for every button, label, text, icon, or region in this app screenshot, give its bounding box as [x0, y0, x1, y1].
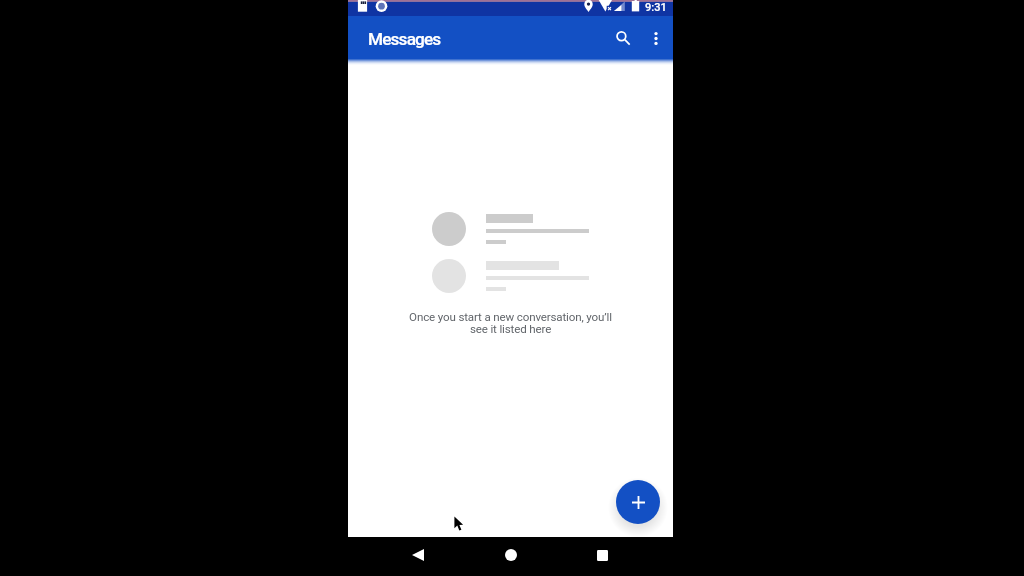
- button[interactable]: Home: [491, 538, 531, 572]
- staticText: Once you start a new conversation, you’l…: [348, 310, 673, 336]
- staticText: Messages: [368, 29, 441, 49]
- button[interactable]: Back: [398, 538, 438, 572]
- staticText: 9:31: [645, 1, 667, 14]
- button[interactable]: Search: [603, 19, 641, 57]
- button[interactable]: More options: [639, 21, 673, 55]
- button[interactable]: Start new conversation: [616, 480, 660, 524]
- button[interactable]: Recent apps: [582, 538, 622, 572]
